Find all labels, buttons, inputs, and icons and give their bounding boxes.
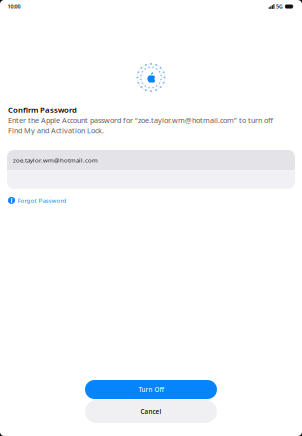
button[interactable]: Cancel (85, 400, 217, 423)
button[interactable]: i (0, 196, 302, 205)
staticText: Forgot Password (17, 196, 66, 205)
staticText: i (10, 196, 12, 205)
staticText: Enter the Apple Account password for “zo… (8, 115, 273, 125)
button[interactable]: Turn Off (85, 380, 217, 399)
staticText: 5G (276, 3, 283, 10)
staticText: Cancel (140, 407, 161, 416)
staticText: Confirm Password (8, 104, 77, 115)
staticText: Find My and Activation Lock. (8, 125, 104, 135)
staticText: zoe.taylor.wm@hotmail.com (13, 156, 98, 164)
staticText: 10:00 (7, 3, 20, 10)
staticText: Turn Off (138, 385, 163, 394)
